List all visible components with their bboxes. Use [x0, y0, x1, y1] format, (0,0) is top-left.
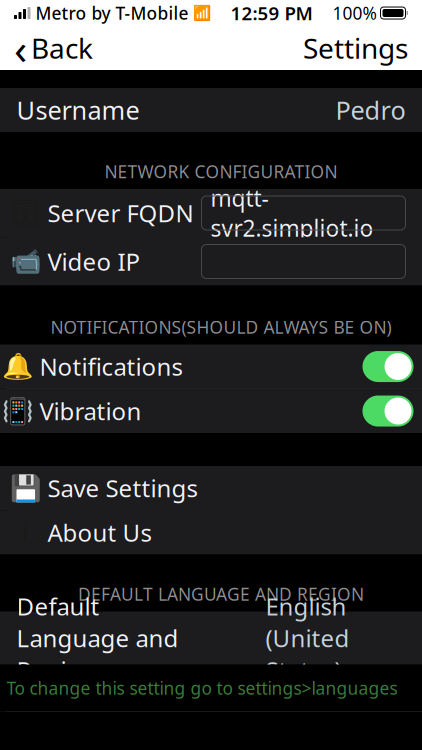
staticText: 12:59 PM: [230, 1, 312, 25]
staticText: Username: [16, 93, 139, 127]
staticText: Default Language and Region: [16, 590, 178, 686]
staticText: 100%: [332, 1, 376, 24]
staticText: DEFAULT LANGUAGE AND REGION: [78, 582, 364, 605]
staticText: NOTIFICATIONS(SHOULD ALWAYS BE ON): [50, 315, 391, 338]
staticText: About Us: [47, 517, 151, 548]
button[interactable]: Settings: [289, 27, 422, 69]
staticText: mqtt-svr2.simpliot.io: [210, 183, 373, 243]
staticText: English (United States): [265, 590, 349, 686]
staticText: Back: [31, 29, 93, 67]
staticText: 📹: [9, 247, 41, 276]
button[interactable]: 🔔: [0, 344, 422, 388]
staticText: Notifications: [39, 351, 182, 382]
button[interactable]: mqtt-svr2.simpliot.io: [201, 196, 405, 230]
button[interactable]: Default Language and Region: [0, 612, 422, 665]
button[interactable]: ‹: [0, 27, 107, 69]
button[interactable]: 💾: [0, 466, 422, 510]
button[interactable]: 📳: [0, 389, 422, 433]
staticText: Save Settings: [47, 472, 197, 504]
staticText: Video IP: [47, 246, 140, 277]
staticText: Vibration: [39, 395, 141, 427]
button[interactable]: ℹ: [0, 510, 422, 554]
staticText: ‹: [14, 20, 27, 76]
staticText: 💾: [9, 474, 41, 502]
staticText: Server FQDN: [47, 197, 193, 229]
staticText: 📳: [1, 397, 33, 425]
staticText: 🔔: [1, 352, 33, 381]
staticText: 📶: [192, 5, 210, 21]
button[interactable]: [201, 244, 405, 278]
staticText: Settings: [303, 29, 408, 67]
button[interactable]: Username: [0, 88, 422, 132]
staticText: To change this setting go to settings>la…: [6, 677, 397, 700]
staticText: Pedro: [335, 93, 405, 127]
staticText: NETWORK CONFIGURATION: [104, 160, 337, 183]
staticText: Metro by T-Mobile: [35, 1, 188, 24]
